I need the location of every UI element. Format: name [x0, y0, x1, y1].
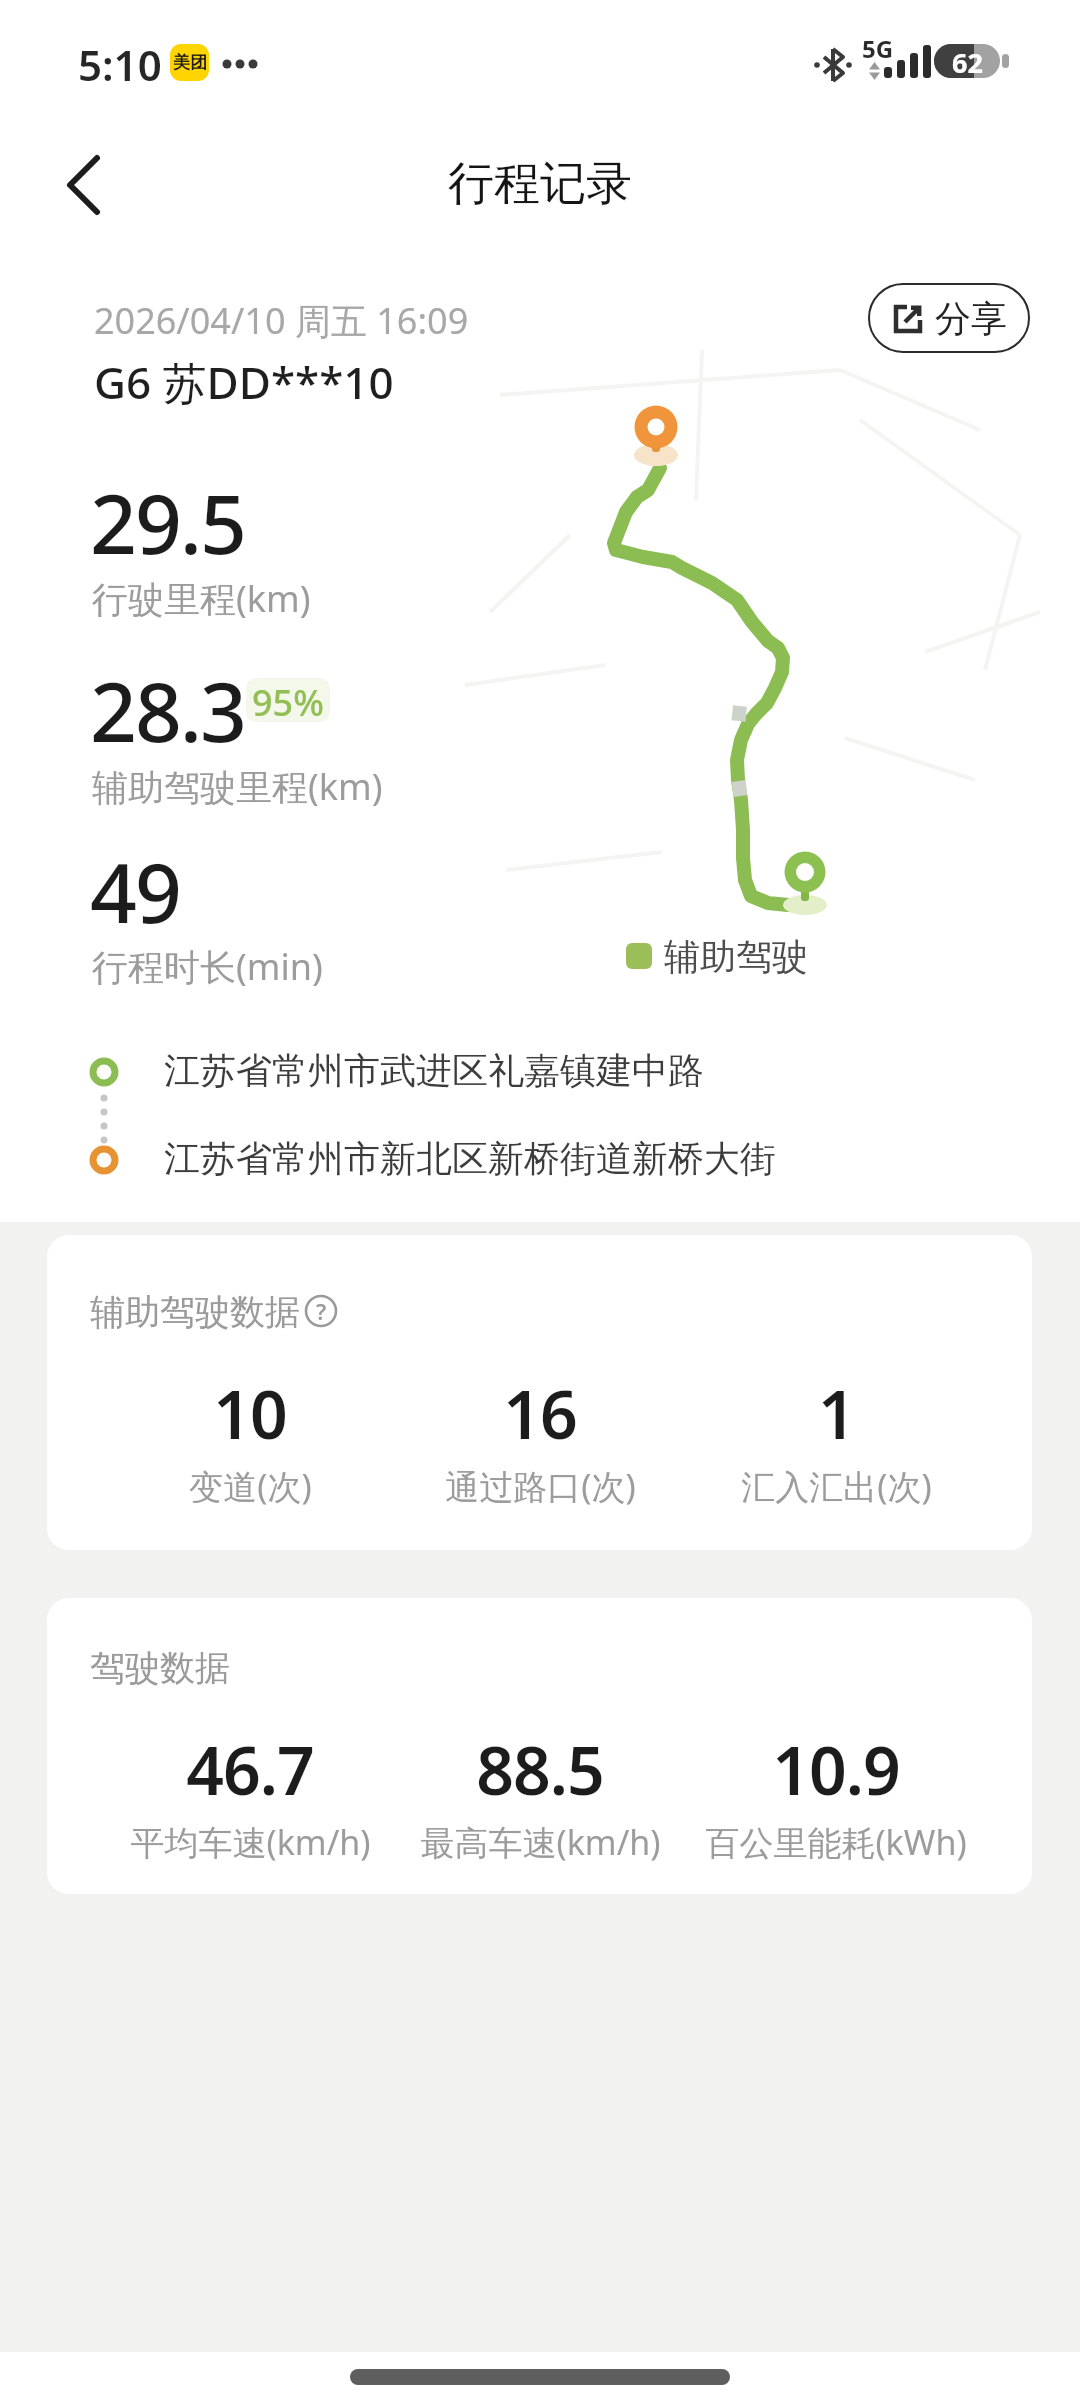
- staticText: 49: [90, 835, 180, 947]
- staticText: 5:10: [78, 36, 162, 93]
- staticText: G6 苏DD***10: [94, 352, 394, 412]
- staticText: 行驶里程(km): [92, 574, 311, 623]
- staticText: 江苏省常州市武进区礼嘉镇建中路: [164, 1048, 704, 1093]
- button[interactable]: 分享: [868, 283, 1030, 353]
- staticText: 10.9: [772, 1724, 900, 1814]
- staticText: 辅助驾驶数据: [90, 1290, 300, 1334]
- staticText: 29.5: [90, 466, 246, 578]
- staticText: 百公里能耗(kWh): [705, 1819, 967, 1865]
- staticText: 5G: [862, 32, 894, 65]
- staticText: 95%: [252, 678, 324, 722]
- staticText: 2026/04/10 周五 16:09: [94, 296, 469, 345]
- staticText: 平均车速(km/h): [130, 1819, 371, 1865]
- button[interactable]: [56, 146, 112, 222]
- staticText: 辅助驾驶里程(km): [92, 762, 383, 811]
- staticText: 通过路口(次): [445, 1463, 636, 1509]
- staticText: 28.3: [90, 654, 246, 766]
- staticText: 46.7: [186, 1724, 314, 1814]
- staticText: 美团: [173, 52, 207, 73]
- button[interactable]: [47, 1598, 1032, 1894]
- staticText: 江苏省常州市新北区新桥街道新桥大街: [164, 1136, 776, 1181]
- staticText: 驾驶数据: [90, 1646, 230, 1690]
- staticText: 16: [503, 1368, 577, 1458]
- staticText: 变道(次): [189, 1463, 312, 1509]
- staticText: 分享: [935, 296, 1007, 341]
- staticText: 行程时长(min): [92, 942, 323, 991]
- button[interactable]: [47, 1235, 1032, 1550]
- staticText: 10: [213, 1368, 287, 1458]
- staticText: 最高车速(km/h): [420, 1819, 661, 1865]
- staticText: 行程记录: [448, 155, 632, 213]
- staticText: 汇入汇出(次): [741, 1463, 932, 1509]
- staticText: ?: [316, 1296, 327, 1326]
- staticText: 88.5: [476, 1724, 604, 1814]
- staticText: 1: [818, 1368, 855, 1458]
- staticText: 62: [952, 44, 983, 78]
- staticText: 辅助驾驶: [664, 934, 808, 979]
